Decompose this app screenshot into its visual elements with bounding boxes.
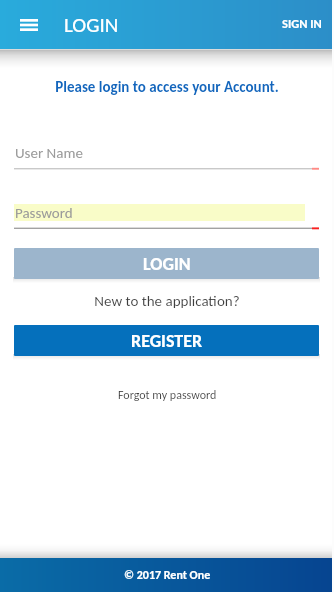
button[interactable]: LOGIN <box>14 248 319 279</box>
button[interactable]: Forgot my password <box>112 385 223 406</box>
staticText: Password <box>15 204 73 222</box>
staticText: New to the application? <box>0 292 334 310</box>
button[interactable]: REGISTER <box>14 325 319 356</box>
staticText: LOGIN <box>64 12 119 38</box>
button[interactable]: Password <box>14 201 319 229</box>
staticText: REGISTER <box>131 330 203 352</box>
button[interactable]: SIGN IN <box>277 9 327 38</box>
staticText: Forgot my password <box>118 388 217 403</box>
staticText: SIGN IN <box>282 16 322 31</box>
button[interactable]: Open navigation menu <box>11 7 46 42</box>
staticText: © 2017 Rent One <box>124 568 211 583</box>
staticText: Please login to access your Account. <box>0 78 334 96</box>
staticText: LOGIN <box>143 253 191 275</box>
staticText: User Name <box>15 144 83 162</box>
button[interactable]: User Name <box>14 141 319 170</box>
